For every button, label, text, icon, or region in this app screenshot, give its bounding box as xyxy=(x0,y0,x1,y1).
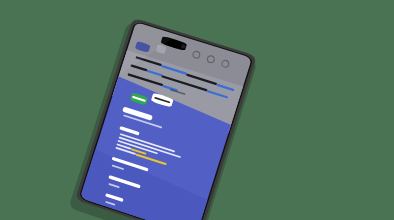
button[interactable]: Toolbar actions xyxy=(168,24,212,35)
button[interactable]: Hebrew word chip xyxy=(139,86,167,101)
button[interactable]: Psalms book selector xyxy=(108,50,134,61)
button[interactable]: Hebrew language tab xyxy=(166,80,202,95)
button[interactable]: Drag handle xyxy=(150,60,210,68)
